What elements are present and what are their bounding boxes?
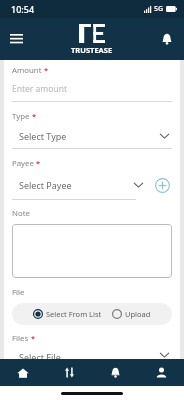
- staticText: Select Payee: [19, 179, 72, 191]
- button[interactable]: [12, 224, 172, 278]
- button[interactable]: Profile: [138, 359, 184, 386]
- button[interactable]: Home: [0, 359, 46, 386]
- button[interactable]: Select File: [12, 351, 172, 359]
- staticText: TRUSTEASE: [71, 45, 113, 55]
- staticText: Amount: [12, 65, 42, 76]
- staticText: File: [12, 287, 25, 298]
- staticText: 5G: [154, 4, 164, 14]
- button[interactable]: Select Payee: [12, 179, 146, 191]
- button[interactable]: Upload: [112, 309, 151, 319]
- staticText: *: [32, 111, 37, 121]
- staticText: Select From List: [46, 309, 102, 319]
- staticText: Note: [12, 208, 30, 219]
- staticText: Files: [12, 333, 29, 344]
- staticText: *: [44, 65, 49, 75]
- button[interactable]: Notifications: [156, 28, 178, 50]
- staticText: *: [31, 333, 36, 343]
- staticText: Enter amount: [12, 83, 67, 95]
- button[interactable]: Select From List: [33, 309, 102, 319]
- staticText: Upload: [125, 309, 151, 319]
- button[interactable]: Select Type: [12, 130, 172, 142]
- button[interactable]: Add payee: [152, 175, 172, 195]
- staticText: Payee: [12, 158, 34, 169]
- staticText: 10:54: [11, 3, 35, 15]
- button[interactable]: Transfers: [46, 359, 92, 386]
- staticText: Select Type: [19, 130, 67, 142]
- button[interactable]: Menu: [5, 28, 27, 50]
- staticText: Select File: [19, 351, 61, 359]
- button[interactable]: Alerts: [92, 359, 138, 386]
- staticText: Type: [12, 111, 30, 122]
- staticText: *: [36, 158, 41, 168]
